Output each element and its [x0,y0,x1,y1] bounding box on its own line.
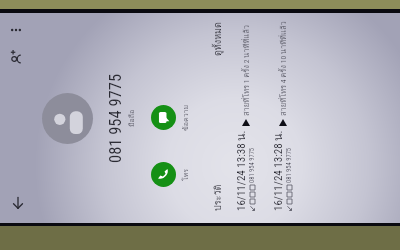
button[interactable]: More options [9,23,23,37]
staticText: 081 954 9775 [285,147,293,183]
staticText: สายที่โทร 1 ครั้ง 2 นาทีที่แล้ว [240,25,252,116]
staticText: 16/11/24 13:28 น. [269,130,286,211]
staticText: ประวัติ [211,184,225,211]
button[interactable]: 16/11/24 13:38 น. [232,13,262,223]
button[interactable] [151,162,176,187]
staticText: โทร [180,168,191,181]
button[interactable]: Contact photo [42,93,93,144]
button[interactable] [151,105,176,130]
staticText: ข้อความ [180,104,191,131]
staticText: 081 954 9775 [106,73,125,163]
staticText: 16/11/24 13:38 น. [232,130,249,211]
button[interactable]: 16/11/24 13:28 น. [269,13,299,223]
button[interactable]: Add contact [9,49,25,65]
staticText: ดูทั้งหมด [211,22,225,56]
staticText: มือถือ [126,109,137,127]
button[interactable]: ดูทั้งหมด [211,22,225,56]
staticText: สายที่โทร 4 ครั้ง 10 นาทีที่แล้ว [277,21,289,116]
staticText: 081 954 9775 [248,147,256,183]
button[interactable]: Back [10,195,26,211]
